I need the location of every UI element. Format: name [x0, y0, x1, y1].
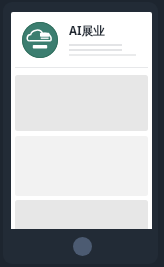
button[interactable]: App logo — [11, 12, 152, 67]
staticText: AI展业 — [69, 23, 105, 39]
other: App logo — [22, 22, 58, 58]
button[interactable]: Home — [73, 237, 92, 256]
button[interactable]: AI展业 — [69, 23, 105, 39]
